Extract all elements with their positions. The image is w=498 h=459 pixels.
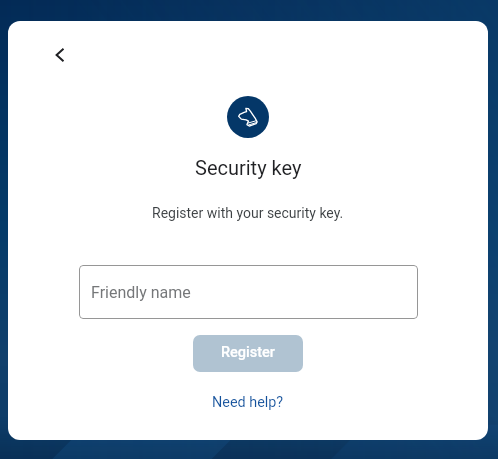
- button[interactable]: Back: [44, 39, 76, 71]
- staticText: Friendly name: [91, 283, 191, 302]
- staticText: Register with your security key.: [152, 205, 344, 221]
- button[interactable]: Friendly name: [79, 265, 418, 319]
- staticText: Need help?: [212, 394, 284, 411]
- button[interactable]: Register: [193, 335, 303, 372]
- staticText: Security key: [195, 156, 302, 179]
- button[interactable]: Need help?: [212, 394, 284, 411]
- staticText: Register: [221, 344, 275, 361]
